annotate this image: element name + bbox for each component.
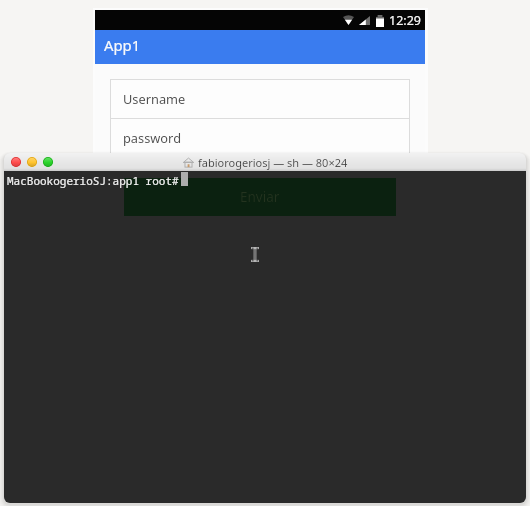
button[interactable]: Enviar [124,178,396,216]
button[interactable]: App1 [95,30,425,64]
staticText: Enviar [240,188,280,206]
button[interactable]: Close window [11,157,21,167]
button[interactable]: password [111,119,409,157]
staticText: fabiorogeriosj — sh — 80×24 [198,155,348,170]
button[interactable]: Username [111,80,409,118]
staticText: 12:29 [389,12,421,29]
button[interactable]: Minimize window [27,157,37,167]
staticText: Username [123,90,186,107]
staticText: MacBookogerioSJ:app1 root# [7,173,179,188]
staticText: App1 [104,35,141,55]
button[interactable]: Zoom window [43,157,53,167]
staticText: password [123,129,182,146]
